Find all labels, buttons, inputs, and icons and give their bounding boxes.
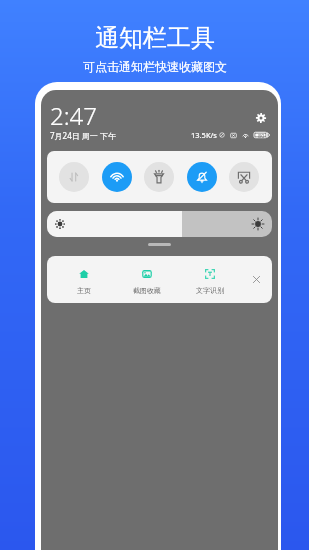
staticText: 13.5K/s bbox=[191, 130, 217, 140]
button[interactable]: Wi-Fi bbox=[102, 162, 132, 192]
staticText: 7月24日 周一 下午 bbox=[50, 130, 116, 141]
button[interactable]: Brightness bbox=[47, 211, 272, 237]
staticText: 可点击通知栏快速收藏图文 bbox=[83, 59, 227, 74]
button[interactable]: Settings bbox=[255, 112, 267, 124]
staticText: 通知栏工具 bbox=[95, 23, 215, 53]
button[interactable]: Flashlight bbox=[144, 162, 174, 192]
staticText: 80 bbox=[258, 132, 265, 139]
button[interactable]: 文字识别 bbox=[178, 256, 241, 303]
staticText: 2:47 bbox=[50, 99, 97, 132]
button[interactable]: Mobile data bbox=[59, 162, 89, 192]
button[interactable]: Close bbox=[241, 256, 272, 303]
button[interactable]: Silent mode bbox=[187, 162, 217, 192]
button[interactable]: 主页 bbox=[52, 256, 115, 303]
staticText: 主页 bbox=[77, 286, 91, 295]
button[interactable]: Screenshot bbox=[229, 162, 259, 192]
staticText: 截图收藏 bbox=[133, 286, 161, 295]
staticText: 文字识别 bbox=[196, 286, 224, 295]
button[interactable]: 截图收藏 bbox=[115, 256, 178, 303]
